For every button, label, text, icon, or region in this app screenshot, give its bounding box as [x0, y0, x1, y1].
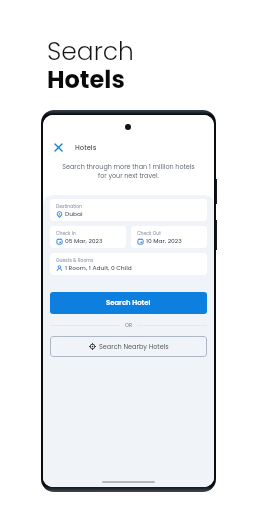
staticText: Guests & Rooms — [56, 257, 94, 263]
button[interactable]: Destination — [50, 199, 207, 221]
button[interactable]: Search Nearby Hotels — [50, 336, 207, 357]
staticText: Search through more than 1 million hotel… — [43, 162, 214, 181]
staticText: Search — [47, 34, 134, 69]
staticText: Dubai — [65, 210, 83, 218]
staticText: Check Out — [137, 230, 161, 236]
staticText: Destination — [56, 203, 83, 209]
button[interactable]: Close — [52, 141, 65, 154]
button[interactable]: Check In — [50, 226, 126, 248]
staticText: 10 Mar, 2023 — [146, 237, 182, 245]
staticText: 05 Mar, 2023 — [65, 237, 103, 245]
staticText: Hotels — [75, 143, 97, 153]
button[interactable]: Search Hotel — [50, 292, 207, 314]
staticText: OR — [125, 322, 132, 329]
staticText: Check In — [56, 230, 76, 236]
staticText: 1 Room, 1 Adult, 0 Child — [65, 264, 132, 272]
staticText: Search Hotel — [106, 298, 151, 308]
staticText: Search Nearby Hotels — [99, 342, 169, 351]
staticText: Hotels — [47, 63, 125, 97]
button[interactable]: Check Out — [131, 226, 207, 248]
button[interactable]: Guests & Rooms — [50, 253, 207, 275]
